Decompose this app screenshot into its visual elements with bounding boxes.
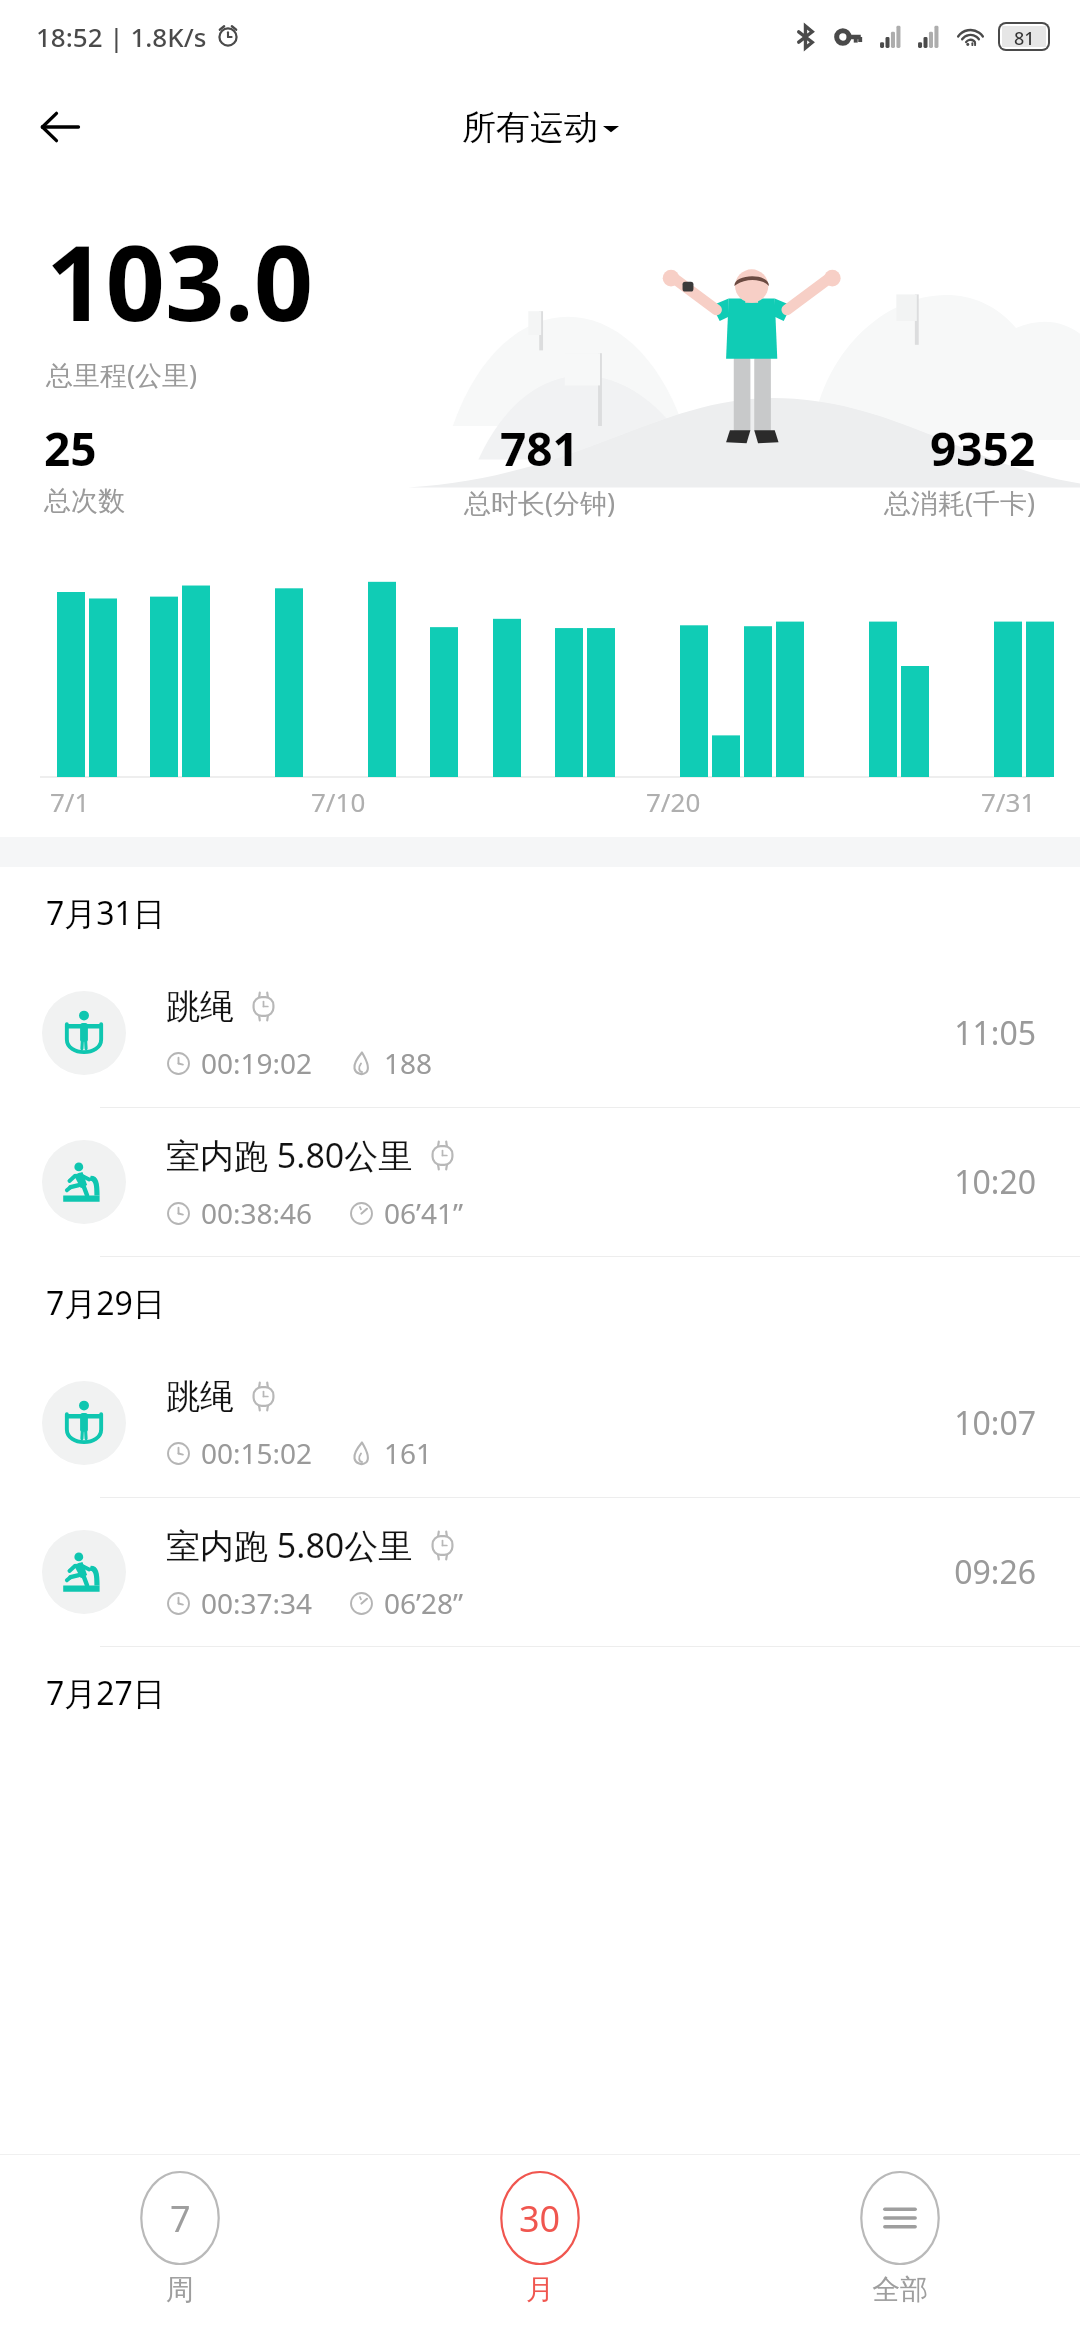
staticText: 06’41” bbox=[384, 1194, 464, 1232]
button[interactable]: 9352 bbox=[705, 417, 1036, 521]
staticText: 室内跑 5.80公里 bbox=[166, 1522, 413, 1568]
staticText: 总次数 bbox=[44, 484, 125, 518]
button[interactable]: 跳绳 bbox=[0, 959, 1080, 1107]
staticText: 7月27日 bbox=[46, 1671, 165, 1715]
staticText: 7/1 bbox=[50, 784, 90, 819]
staticText: 7/10 bbox=[311, 784, 366, 819]
button[interactable]: 所有运动 bbox=[462, 106, 619, 149]
staticText: 10:20 bbox=[954, 1160, 1036, 1204]
staticText: 7 bbox=[170, 2194, 191, 2243]
staticText: 7/31 bbox=[981, 784, 1036, 819]
button[interactable]: 全部 bbox=[720, 2168, 1080, 2311]
staticText: 室内跑 5.80公里 bbox=[166, 1132, 413, 1178]
button[interactable]: 781 bbox=[374, 417, 705, 521]
staticText: 00:37:34 bbox=[201, 1584, 313, 1622]
staticText: 7/20 bbox=[646, 784, 701, 819]
button[interactable]: 7 bbox=[0, 2168, 360, 2311]
staticText: 30 bbox=[519, 2194, 561, 2243]
staticText: 跳绳 bbox=[166, 985, 234, 1028]
button[interactable]: Back bbox=[24, 91, 96, 163]
staticText: 18:52 | 1.8K/s bbox=[36, 19, 207, 54]
staticText: 161 bbox=[384, 1434, 433, 1472]
staticText: 总里程(公里) bbox=[46, 356, 198, 393]
staticText: 09:26 bbox=[954, 1550, 1036, 1594]
button[interactable]: 室内跑 5.80公里 bbox=[0, 1108, 1080, 1256]
button[interactable]: 25 bbox=[44, 417, 374, 518]
staticText: 周 bbox=[166, 2272, 194, 2307]
staticText: 10:07 bbox=[954, 1401, 1036, 1445]
staticText: 81 bbox=[1014, 26, 1035, 47]
staticText: 11:05 bbox=[954, 1011, 1036, 1055]
staticText: 781 bbox=[500, 417, 579, 480]
staticText: 9352 bbox=[930, 417, 1036, 480]
staticText: 00:15:02 bbox=[201, 1434, 313, 1472]
staticText: 所有运动 bbox=[462, 106, 598, 149]
staticText: 06’28” bbox=[384, 1584, 464, 1622]
button[interactable]: 30 bbox=[360, 2168, 720, 2311]
button[interactable]: 室内跑 5.80公里 bbox=[0, 1498, 1080, 1646]
staticText: 月 bbox=[526, 2272, 554, 2307]
staticText: 全部 bbox=[872, 2272, 928, 2307]
button[interactable]: 跳绳 bbox=[0, 1349, 1080, 1497]
staticText: 总消耗(千卡) bbox=[884, 484, 1036, 521]
staticText: 跳绳 bbox=[166, 1375, 234, 1418]
staticText: 103.0 bbox=[46, 210, 314, 352]
staticText: 25 bbox=[44, 417, 97, 480]
staticText: 00:19:02 bbox=[201, 1044, 313, 1082]
staticText: 188 bbox=[384, 1044, 433, 1082]
staticText: 7月29日 bbox=[46, 1281, 165, 1325]
staticText: 00:38:46 bbox=[201, 1194, 313, 1232]
staticText: 7月31日 bbox=[46, 891, 165, 935]
staticText: 总时长(分钟) bbox=[464, 484, 616, 521]
